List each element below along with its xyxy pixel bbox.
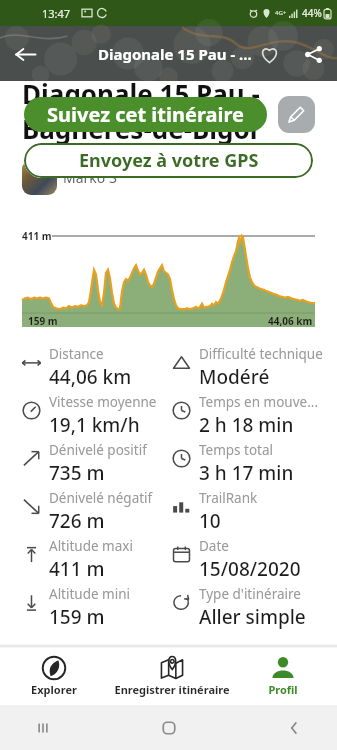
staticText: TrailRank xyxy=(199,489,258,507)
staticText: Diagonale 15 Pau - ... xyxy=(98,44,252,64)
staticText: Dénivelé négatif xyxy=(49,489,153,507)
button[interactable]: Back xyxy=(271,705,317,750)
staticText: Altitude mini xyxy=(49,585,131,603)
staticText: Type d'itinéraire xyxy=(199,585,301,603)
staticText: Modéré xyxy=(199,364,270,390)
staticText: 13:47 xyxy=(42,6,71,21)
button[interactable]: Add to favourites xyxy=(247,32,291,76)
button[interactable]: Share xyxy=(291,32,335,76)
button[interactable]: Profil xyxy=(224,648,337,705)
button[interactable]: Home xyxy=(146,705,192,750)
staticText: Difficulté technique xyxy=(199,345,323,363)
staticText: 726 m xyxy=(49,508,105,534)
staticText: Bagnères-de-Bigor xyxy=(22,111,262,146)
staticText: Altitude maxi xyxy=(49,537,133,555)
staticText: Distance xyxy=(49,345,104,363)
staticText: 411 m xyxy=(49,556,105,582)
staticText: Marko 3 xyxy=(63,168,117,187)
staticText: 735 m xyxy=(49,460,105,486)
staticText: 19,1 km/h xyxy=(49,412,140,438)
staticText: 44% xyxy=(302,6,322,20)
staticText: 15/08/2020 xyxy=(199,556,301,582)
staticText: 159 m xyxy=(49,604,105,630)
staticText: Vitesse moyenne xyxy=(49,393,157,411)
button[interactable]: Edit route xyxy=(278,96,315,133)
staticText: 411 m xyxy=(22,229,52,243)
staticText: Envoyez à votre GPS xyxy=(79,148,259,173)
staticText: Aller simple xyxy=(199,604,306,630)
staticText: Temps en mouve... xyxy=(199,393,319,411)
button[interactable]: Envoyez à votre GPS xyxy=(24,143,313,178)
button[interactable]: Back xyxy=(2,31,48,77)
staticText: Dénivelé positif xyxy=(49,441,147,459)
staticText: Enregistrer itinéraire xyxy=(114,682,230,697)
staticText: Explorer xyxy=(31,682,77,697)
staticText: Profil xyxy=(268,682,298,697)
button[interactable]: Recent apps xyxy=(20,705,66,750)
staticText: 2 h 18 min xyxy=(199,412,294,438)
staticText: Diagonale 15 Pau - xyxy=(22,76,260,111)
button[interactable]: Enregistrer itinéraire xyxy=(113,648,231,705)
staticText: 44,06 km xyxy=(49,364,132,390)
staticText: Suivez cet itinéraire xyxy=(47,101,244,128)
staticText: Temps total xyxy=(199,441,274,459)
button[interactable]: Explorer xyxy=(0,648,113,705)
button[interactable]: Suivez cet itinéraire xyxy=(24,97,267,132)
staticText: Date xyxy=(199,537,229,555)
staticText: 44,06 km xyxy=(268,314,313,328)
staticText: 4G+ xyxy=(275,9,287,17)
staticText: 159 m xyxy=(28,314,58,328)
staticText: 3 h 17 min xyxy=(199,460,294,486)
staticText: 10 xyxy=(199,508,221,534)
